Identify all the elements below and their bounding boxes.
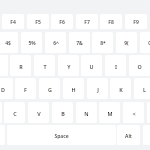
staticText: V	[37, 110, 41, 117]
staticText: C	[13, 110, 17, 117]
staticText: M	[107, 110, 113, 117]
button[interactable]: 5%	[21, 32, 42, 53]
button[interactable]: O	[129, 55, 150, 76]
button[interactable]: 7&	[69, 32, 90, 53]
staticText: D	[1, 86, 5, 93]
staticText: 5%	[28, 40, 36, 47]
button[interactable]: F5	[27, 14, 49, 29]
button[interactable]: I	[105, 55, 126, 76]
staticText: Y	[67, 63, 71, 70]
staticText: B	[61, 110, 65, 117]
button[interactable]: F4	[2, 14, 24, 29]
button[interactable]: <	[123, 102, 144, 123]
button[interactable]: G	[39, 78, 60, 99]
button[interactable]: H	[63, 78, 84, 99]
button[interactable]: R	[10, 55, 31, 76]
button[interactable]: N	[76, 102, 97, 123]
button[interactable]: C	[4, 102, 25, 123]
staticText: G	[48, 86, 52, 93]
button[interactable]: Space	[7, 125, 116, 145]
staticText: F8	[108, 19, 114, 26]
staticText: 7&	[76, 40, 83, 47]
button[interactable]: 8*	[92, 32, 113, 53]
button[interactable]: 9(	[116, 32, 137, 53]
staticText: F7	[84, 19, 90, 26]
staticText: R	[19, 63, 23, 70]
staticText: F9	[133, 19, 139, 26]
staticText: 6^	[53, 40, 59, 47]
button[interactable]: J	[87, 78, 108, 99]
button[interactable]: F7	[76, 14, 98, 29]
button[interactable]: 6^	[45, 32, 66, 53]
staticText: F6	[59, 19, 65, 26]
button[interactable]: U	[81, 55, 102, 76]
button[interactable]: M	[99, 102, 120, 123]
button[interactable]: 4$	[0, 32, 18, 53]
staticText: 8*	[100, 40, 106, 47]
button[interactable]: V	[28, 102, 49, 123]
staticText: K	[119, 86, 123, 93]
button[interactable]: K	[110, 78, 131, 99]
staticText: N	[84, 110, 89, 117]
button[interactable]: Alt	[117, 125, 140, 145]
button[interactable]: D	[0, 78, 13, 99]
button[interactable]: F8	[100, 14, 122, 29]
staticText: F5	[35, 19, 41, 26]
button[interactable]: B	[52, 102, 73, 123]
button[interactable]: F9	[125, 14, 147, 29]
staticText: Alt	[125, 133, 132, 140]
staticText: H	[71, 86, 76, 93]
staticText: F	[24, 86, 27, 93]
staticText: O	[137, 63, 142, 70]
staticText: 9(	[124, 40, 129, 47]
staticText: <	[132, 110, 136, 117]
staticText: U	[89, 63, 94, 70]
button[interactable]: F	[15, 78, 36, 99]
staticText: J	[97, 86, 99, 93]
button[interactable]: 0)	[140, 32, 150, 53]
staticText: Space	[54, 133, 69, 140]
staticText: F4	[10, 19, 16, 26]
button[interactable]: T	[34, 55, 55, 76]
button[interactable]: L	[134, 78, 150, 99]
button[interactable]: Y	[58, 55, 79, 76]
staticText: L	[143, 86, 146, 93]
staticText: T	[43, 63, 47, 70]
button[interactable]: F6	[51, 14, 73, 29]
staticText: I	[115, 63, 117, 70]
staticText: 4$	[5, 40, 11, 47]
staticText: 0)	[148, 40, 150, 47]
